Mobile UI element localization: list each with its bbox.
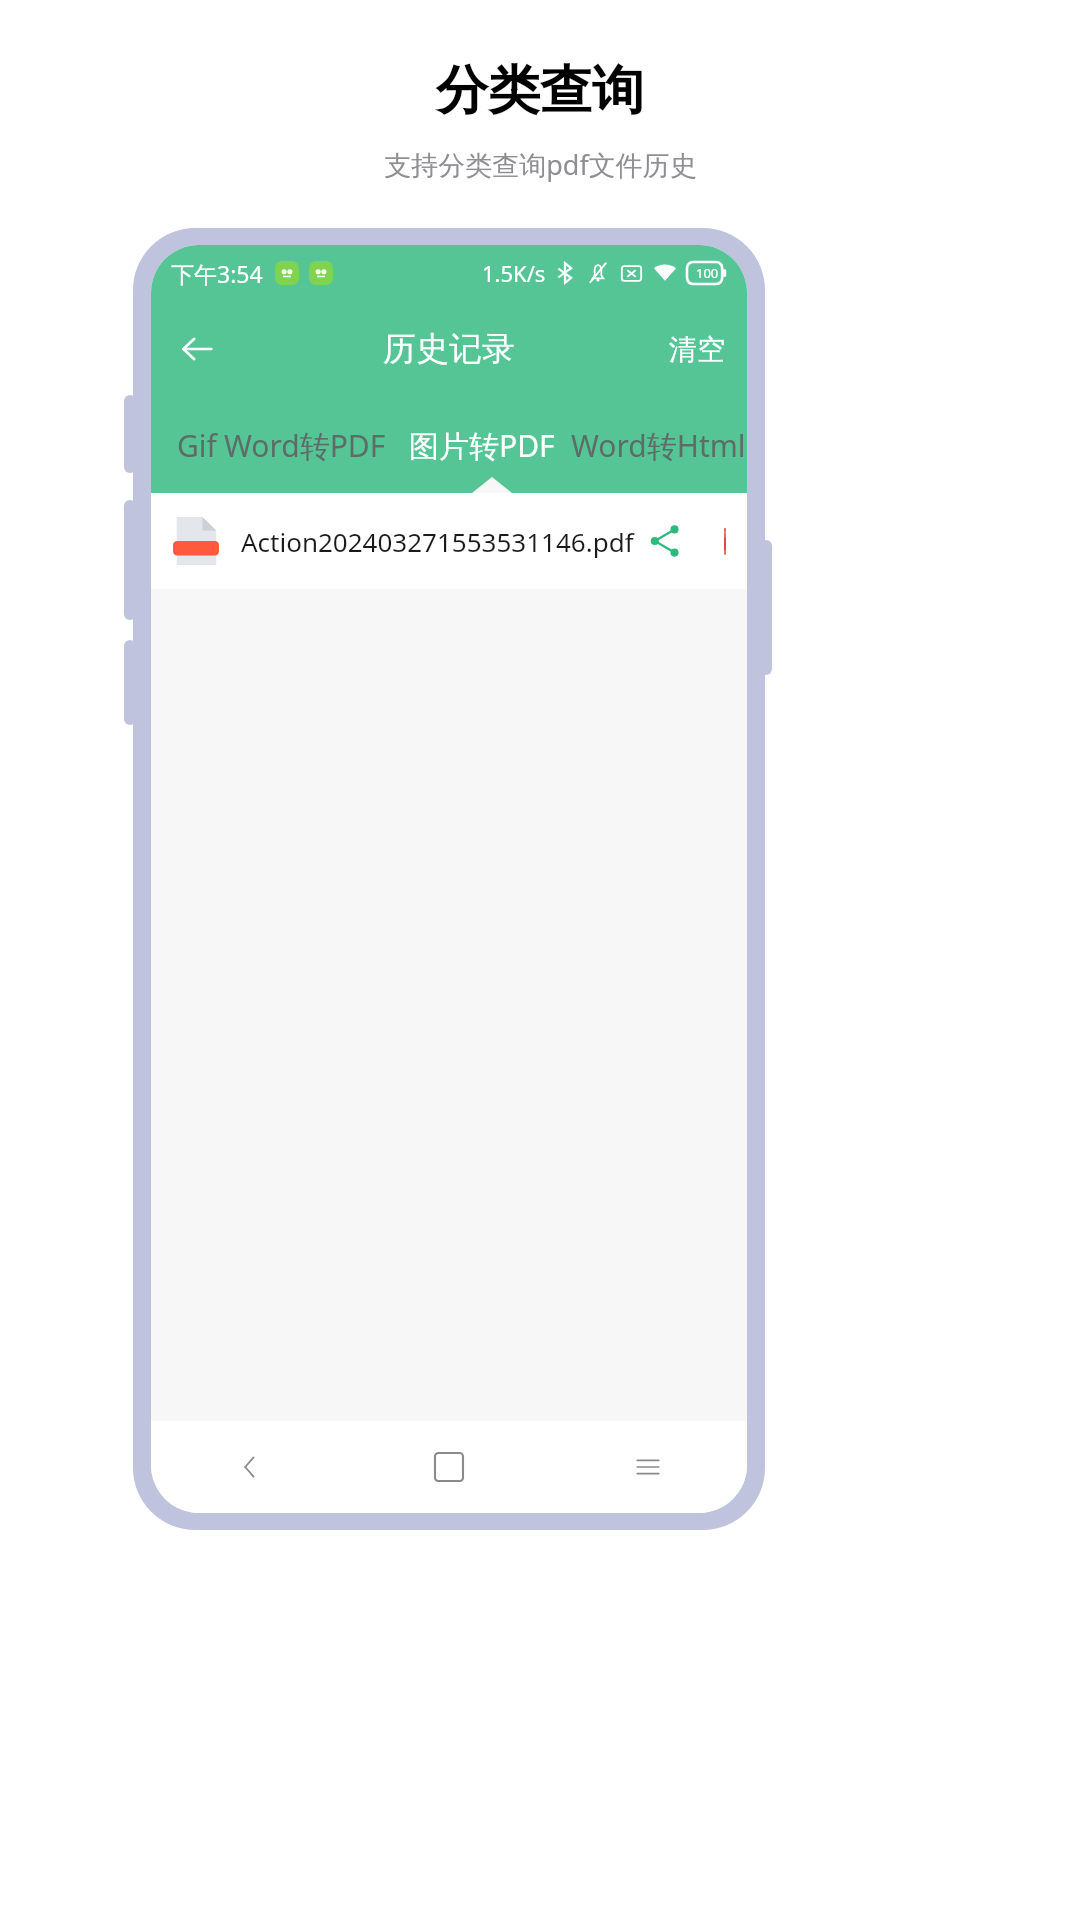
staticText: Word转PDF xyxy=(224,425,386,466)
staticText: 1.5K/s xyxy=(482,258,546,288)
staticText: 支持分类查询pdf文件历史 xyxy=(384,146,697,183)
button[interactable]: Gif xyxy=(151,397,217,493)
button[interactable]: Menu xyxy=(548,1421,747,1513)
staticText: 100 xyxy=(696,264,719,282)
staticText: 历史记录 xyxy=(383,328,515,370)
staticText: Gif xyxy=(177,425,217,466)
button[interactable]: Back xyxy=(151,1421,349,1513)
button[interactable]: Word转Html xyxy=(570,397,747,493)
staticText: 清空 xyxy=(669,332,725,367)
staticText: Word转Html xyxy=(571,425,746,466)
staticText: 下午3:54 xyxy=(171,258,263,289)
staticText: Action202403271553531146.pdf xyxy=(241,524,634,559)
button[interactable]: Home xyxy=(349,1421,548,1513)
button[interactable]: 清空 xyxy=(647,320,747,379)
button[interactable]: Back xyxy=(165,317,229,381)
button[interactable]: Action202403271553531146.pdf xyxy=(151,493,747,589)
staticText: 分类查询 xyxy=(436,58,644,124)
button[interactable]: 图片转PDF xyxy=(393,397,570,493)
staticText: 图片转PDF xyxy=(409,425,555,466)
button[interactable]: Word转PDF xyxy=(217,397,393,493)
button[interactable]: Share xyxy=(634,510,696,572)
